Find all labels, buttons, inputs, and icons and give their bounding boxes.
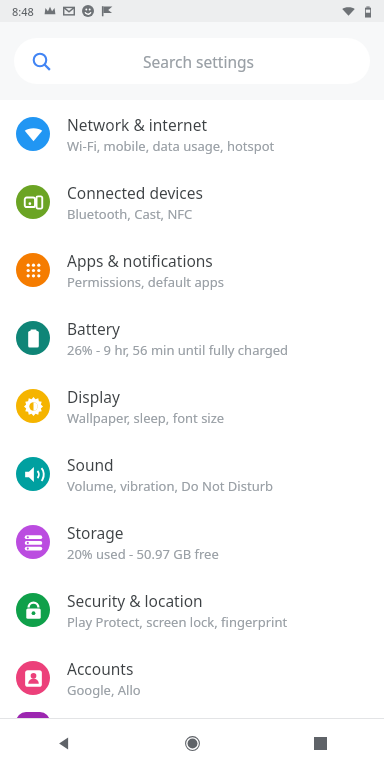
staticText: Apps & notifications (67, 250, 213, 271)
staticText: Accounts (67, 658, 134, 679)
button[interactable]: Apps & notifications (0, 236, 384, 304)
button[interactable]: Sound (0, 440, 384, 508)
staticText: Permissions, default apps (67, 273, 224, 291)
staticText: Search settings (143, 51, 254, 72)
button[interactable]: Accounts (0, 644, 384, 712)
staticText: Bluetooth, Cast, NFC (67, 205, 193, 223)
staticText: Network & internet (67, 114, 207, 135)
staticText: Connected devices (67, 182, 203, 203)
button[interactable]: Security & location (0, 576, 384, 644)
button[interactable]: Search settings (14, 38, 370, 84)
button[interactable]: Storage (0, 508, 384, 576)
button[interactable]: Recent apps (256, 719, 384, 768)
button[interactable]: Back (0, 719, 128, 768)
staticText: 8:48 (12, 4, 34, 19)
button[interactable]: Connected devices (0, 168, 384, 236)
staticText: Sound (67, 454, 114, 475)
staticText: Display (67, 386, 120, 407)
staticText: Wallpaper, sleep, font size (67, 409, 225, 427)
staticText: Security & location (67, 590, 203, 611)
staticText: Battery (67, 318, 121, 339)
staticText: Storage (67, 522, 124, 543)
button[interactable]: Home (128, 719, 256, 768)
staticText: Wi-Fi, mobile, data usage, hotspot (67, 137, 275, 155)
staticText: Volume, vibration, Do Not Disturb (67, 477, 274, 495)
staticText: Google, Allo (67, 681, 141, 699)
button[interactable]: Battery (0, 304, 384, 372)
button[interactable]: Network & internet (0, 100, 384, 168)
staticText: Play Protect, screen lock, fingerprint (67, 613, 288, 631)
button[interactable]: Display (0, 372, 384, 440)
staticText: 26% - 9 hr, 56 min until fully charged (67, 341, 289, 359)
staticText: 20% used - 50.97 GB free (67, 545, 219, 563)
